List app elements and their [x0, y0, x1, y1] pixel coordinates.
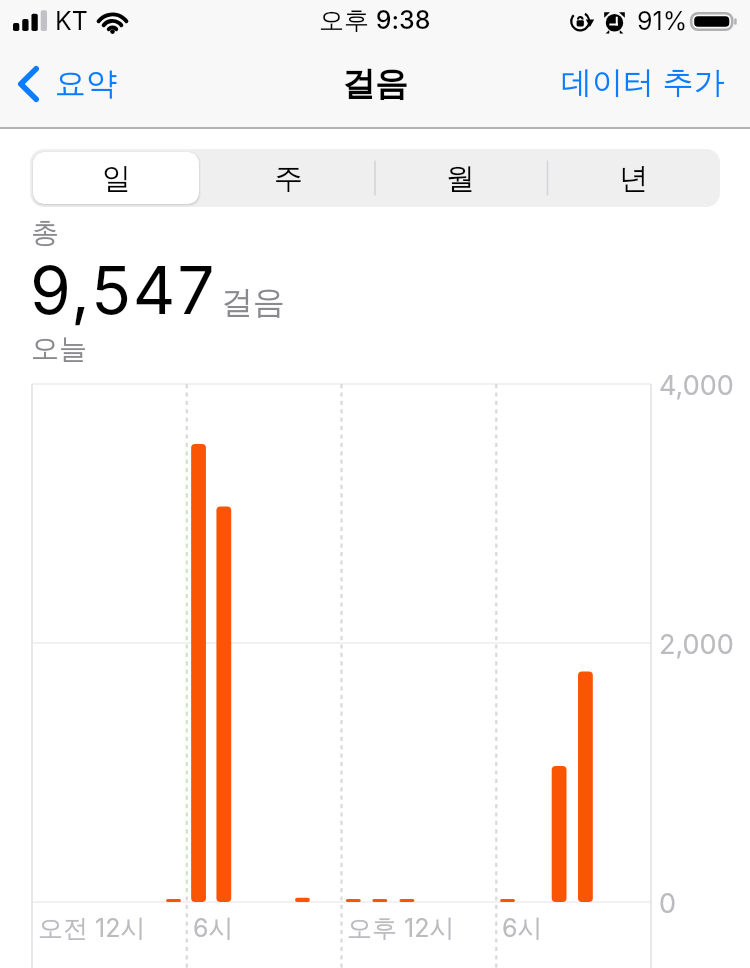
staticText: 총	[31, 215, 59, 250]
button[interactable]: 월	[374, 149, 547, 207]
staticText: 주	[274, 160, 303, 197]
staticText: 0	[659, 887, 677, 920]
staticText: 91%	[637, 6, 688, 36]
staticText: 월	[446, 160, 475, 197]
button[interactable]: 일	[30, 149, 202, 207]
staticText: 년	[619, 160, 648, 197]
staticText: 걸음	[342, 63, 408, 105]
button[interactable]: 년	[547, 149, 720, 207]
staticText: 요약	[55, 64, 117, 103]
staticText: 걸음	[221, 282, 285, 322]
staticText: 6시	[193, 913, 234, 945]
staticText: 일	[102, 160, 131, 197]
staticText: 오후 9:38	[319, 5, 431, 37]
staticText: KT	[55, 6, 88, 36]
staticText: 오늘	[31, 331, 87, 366]
staticText: 6시	[502, 913, 543, 945]
staticText: 4,000	[659, 369, 734, 402]
staticText: 2,000	[659, 628, 734, 661]
staticText: 9,547	[30, 250, 217, 330]
button[interactable]: 요약	[0, 58, 131, 109]
staticText: 데이터 추가	[561, 63, 725, 102]
button[interactable]: 주	[202, 149, 374, 207]
button[interactable]: 데이터 추가	[545, 55, 750, 110]
staticText: 오후 12시	[347, 913, 455, 945]
staticText: 오전 12시	[38, 913, 146, 945]
